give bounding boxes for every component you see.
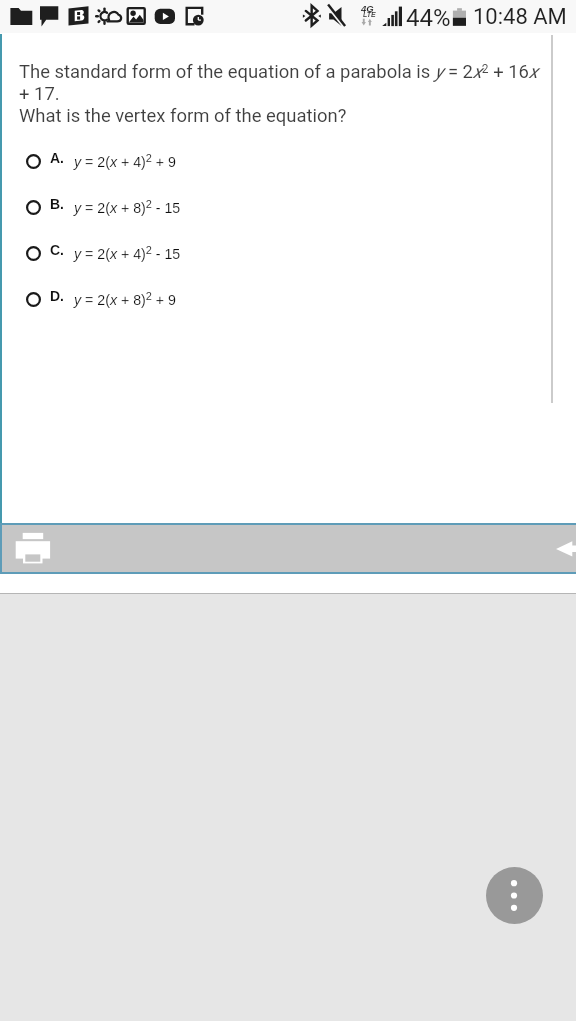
button[interactable]: Print bbox=[2, 525, 576, 572]
button[interactable]: More options bbox=[486, 867, 543, 924]
staticText: 4G bbox=[361, 3, 374, 14]
staticText: 44% bbox=[406, 4, 451, 32]
button[interactable]: C. bbox=[19, 230, 576, 276]
staticText: C. bbox=[50, 242, 64, 258]
button[interactable]: B. bbox=[19, 184, 576, 230]
staticText: B. bbox=[50, 196, 64, 212]
staticText: D. bbox=[50, 288, 64, 304]
staticText: y = 2(x + 8)2 - 15 bbox=[74, 198, 181, 216]
staticText: y = 2(x + 4)2 - 15 bbox=[74, 244, 181, 262]
staticText: LTE bbox=[363, 11, 376, 19]
other: Back bbox=[556, 541, 576, 558]
button[interactable]: A. bbox=[19, 138, 576, 184]
staticText: The standard form of the equation of a p… bbox=[19, 61, 538, 127]
staticText: y = 2(x + 8)2 + 9 bbox=[74, 290, 176, 308]
staticText: A. bbox=[50, 150, 64, 166]
other: Print bbox=[15, 530, 51, 565]
staticText: 10:48 AM bbox=[473, 4, 567, 30]
staticText: y = 2(x + 4)2 + 9 bbox=[74, 152, 176, 170]
button[interactable]: D. bbox=[19, 276, 576, 322]
